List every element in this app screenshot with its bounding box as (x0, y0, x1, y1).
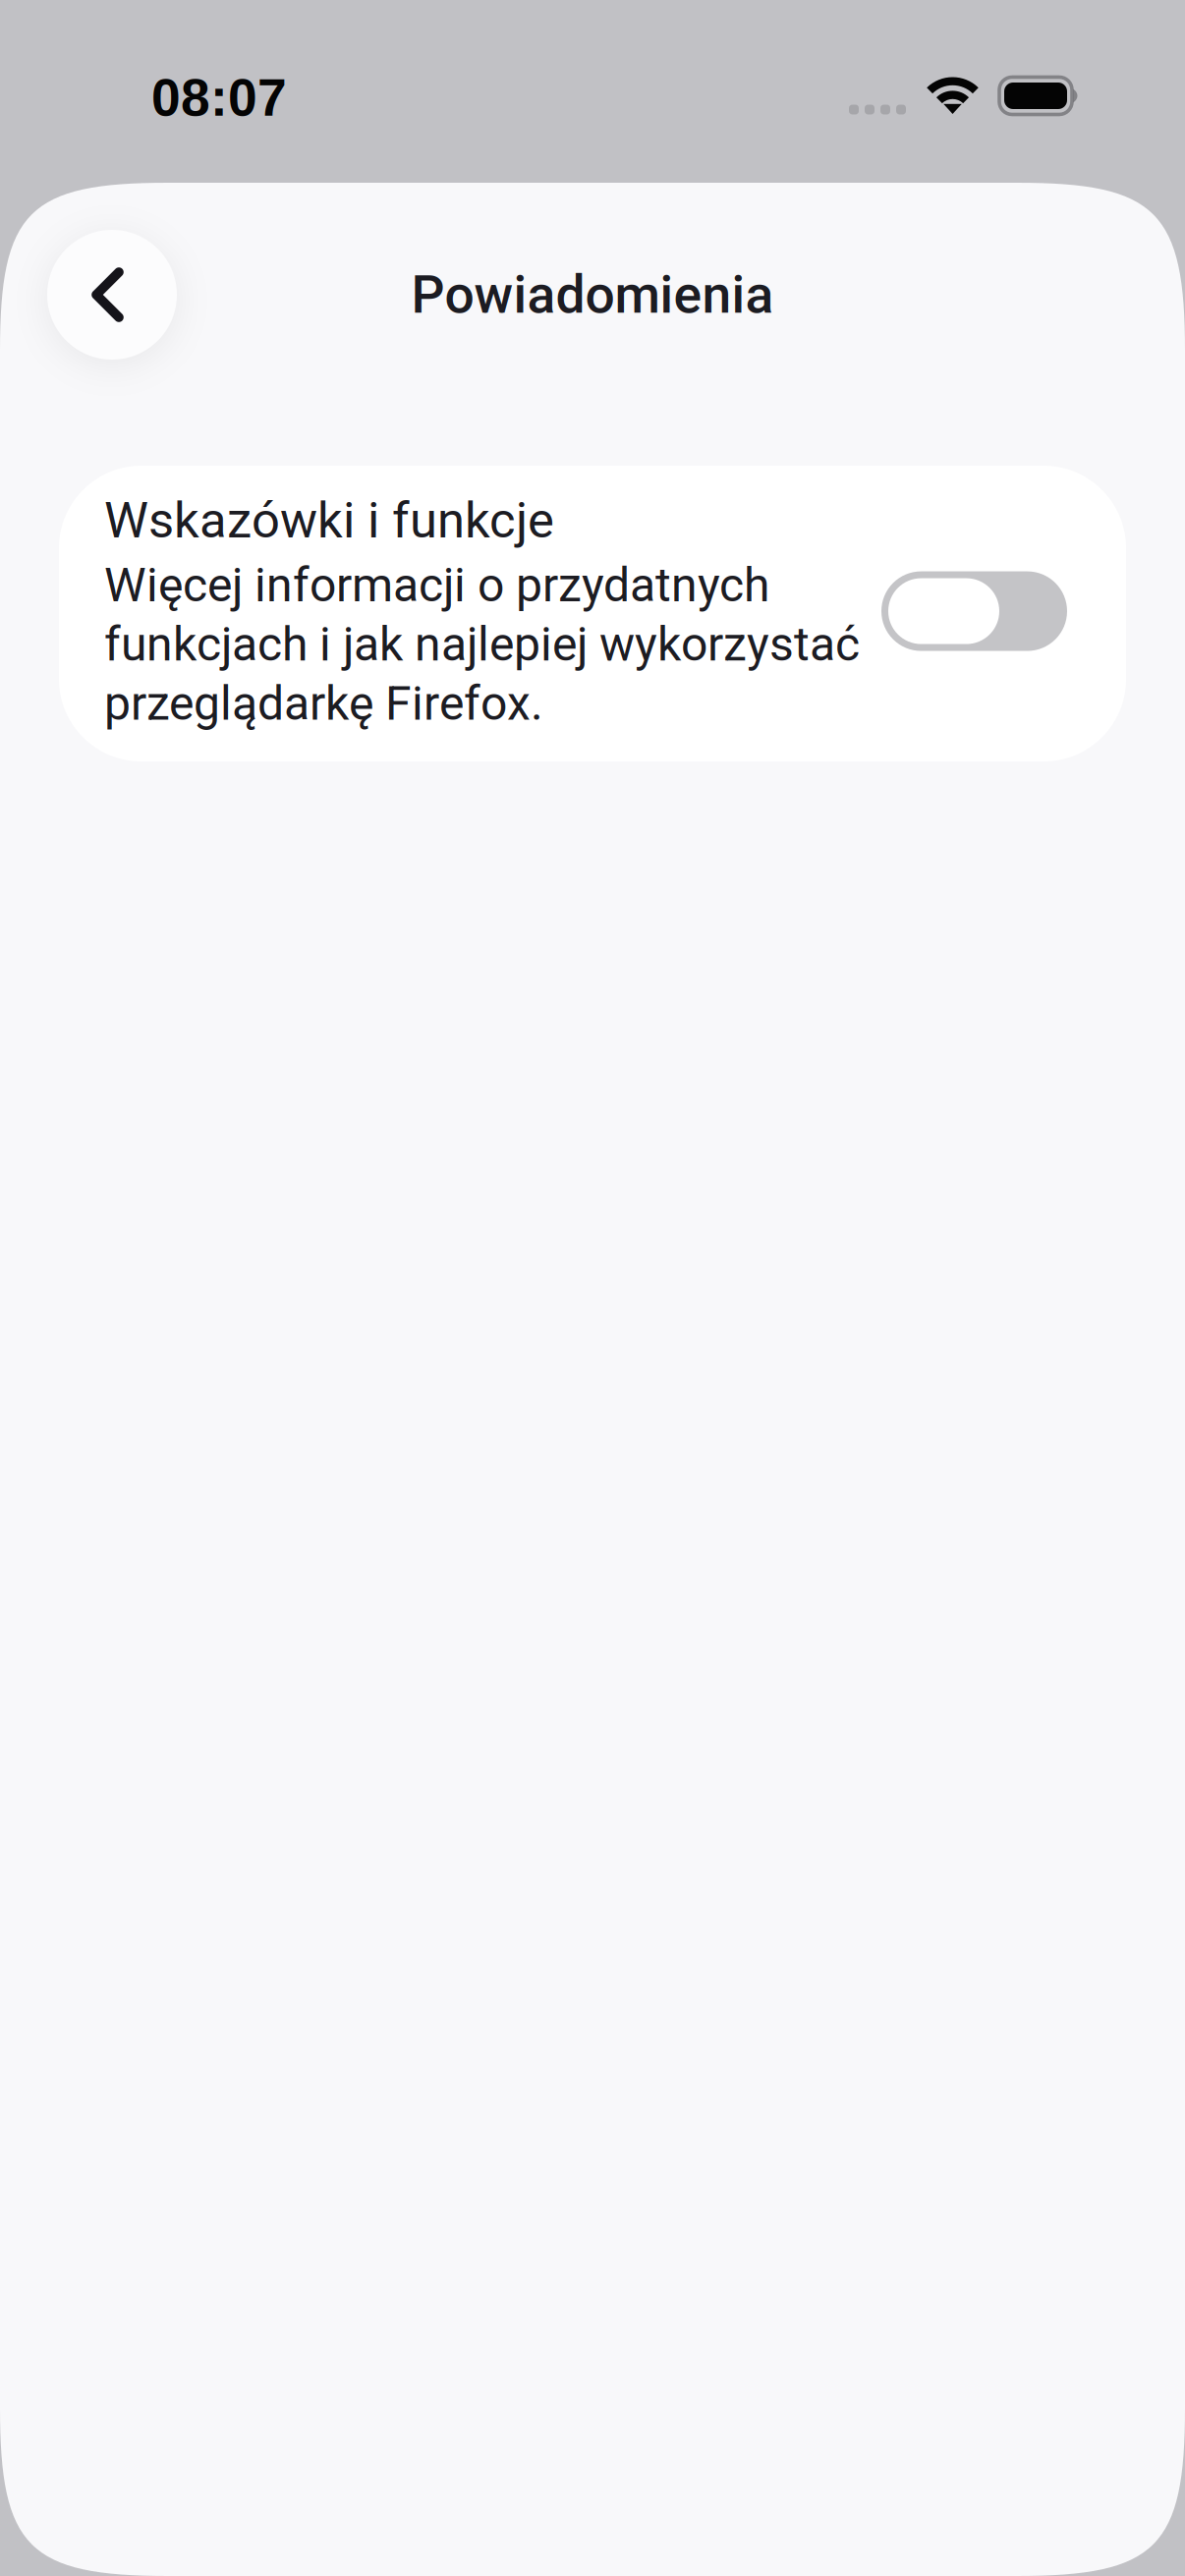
staticText: Powiadomienia (411, 264, 774, 325)
staticText: Wskazówki i funkcje (104, 491, 554, 550)
button[interactable]: Back (47, 230, 177, 360)
staticText: 08:07 (151, 68, 287, 127)
button[interactable]: Wskazówki i funkcje (59, 466, 1126, 762)
staticText: Więcej informacji o przydatnych funkcjac… (104, 557, 860, 731)
